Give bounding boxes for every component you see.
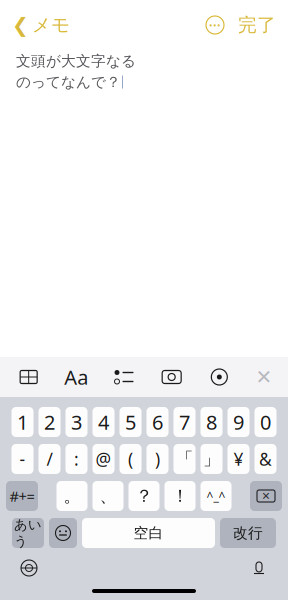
button[interactable]: 完了 xyxy=(230,8,284,42)
staticText: 8 xyxy=(206,409,217,435)
staticText: ¥ xyxy=(233,447,243,470)
staticText: ( xyxy=(128,447,133,470)
button[interactable]: - xyxy=(11,444,33,474)
staticText: 文頭が大文字なる xyxy=(16,52,136,70)
staticText: 6 xyxy=(152,409,163,435)
staticText: : xyxy=(74,447,79,470)
button[interactable]: 7 xyxy=(173,407,195,437)
staticText: 1 xyxy=(17,409,28,435)
button[interactable]: & xyxy=(254,444,276,474)
staticText: 改行 xyxy=(233,524,263,542)
button[interactable]: 空白 xyxy=(82,518,215,548)
button[interactable]: マークアップ xyxy=(200,357,238,397)
button[interactable]: ( xyxy=(119,444,141,474)
button[interactable]: ^_^ xyxy=(200,481,231,511)
staticText: メモ xyxy=(32,13,70,36)
staticText: 3 xyxy=(71,409,82,435)
staticText: 9 xyxy=(233,409,244,435)
button[interactable]: ？ xyxy=(128,481,159,511)
staticText: 4 xyxy=(98,409,109,435)
staticText: 5 xyxy=(125,409,136,435)
staticText: 」 xyxy=(203,448,220,470)
button[interactable]: ！ xyxy=(164,481,195,511)
button[interactable]: チェックリスト xyxy=(105,357,143,397)
button[interactable]: 」 xyxy=(200,444,222,474)
button[interactable]: 0 xyxy=(254,407,276,437)
button[interactable]: 2 xyxy=(38,407,60,437)
button[interactable]: 表 xyxy=(10,357,48,397)
button[interactable]: ) xyxy=(146,444,168,474)
staticText: 「 xyxy=(176,448,193,470)
staticText: ) xyxy=(155,447,160,470)
button[interactable]: 、 xyxy=(92,481,123,511)
button[interactable]: ❮ xyxy=(4,8,78,42)
button[interactable]: / xyxy=(38,444,60,474)
staticText: 0 xyxy=(260,409,271,435)
button[interactable]: 「 xyxy=(173,444,195,474)
staticText: ！ xyxy=(171,485,188,507)
staticText: 。 xyxy=(63,485,80,507)
staticText: / xyxy=(46,447,52,470)
staticText: ❮ xyxy=(12,14,29,36)
button[interactable]: 9 xyxy=(227,407,249,437)
button[interactable]: 1 xyxy=(11,407,33,437)
button[interactable]: 改行 xyxy=(220,518,276,548)
button[interactable]: 削除 xyxy=(250,481,282,511)
staticText: のってなんで？ xyxy=(16,73,121,91)
button[interactable]: 絵文字 xyxy=(49,518,77,548)
button[interactable]: #+= xyxy=(6,481,38,511)
button[interactable]: @ xyxy=(92,444,114,474)
staticText: 完了 xyxy=(238,13,276,36)
staticText: ••• xyxy=(209,19,221,31)
staticText: ^_^ xyxy=(206,488,225,504)
button[interactable]: カメラ xyxy=(153,357,191,397)
staticText: Aa xyxy=(64,364,88,390)
button[interactable]: キーボードを切り替え xyxy=(12,554,46,582)
button[interactable]: 8 xyxy=(200,407,222,437)
staticText: ✕ xyxy=(261,490,270,502)
button[interactable]: 音声入力 xyxy=(242,554,276,582)
staticText: ✕ xyxy=(255,366,272,388)
staticText: - xyxy=(19,447,25,470)
button[interactable]: : xyxy=(65,444,87,474)
button[interactable]: 6 xyxy=(146,407,168,437)
staticText: 2 xyxy=(44,409,55,435)
button[interactable]: 書式 xyxy=(57,357,95,397)
staticText: 7 xyxy=(179,409,190,435)
button[interactable]: 3 xyxy=(65,407,87,437)
button[interactable]: 5 xyxy=(119,407,141,437)
button[interactable]: 。 xyxy=(56,481,87,511)
button[interactable]: その他 xyxy=(200,8,230,42)
staticText: & xyxy=(259,447,272,470)
button[interactable]: あいう xyxy=(12,518,44,548)
staticText: #+= xyxy=(9,486,34,506)
staticText: 空白 xyxy=(133,524,163,542)
staticText: 、 xyxy=(99,485,116,507)
button[interactable]: ¥ xyxy=(227,444,249,474)
button[interactable]: 4 xyxy=(92,407,114,437)
button[interactable]: 閉じる xyxy=(248,357,280,397)
staticText: @ xyxy=(95,447,111,470)
staticText: あいう xyxy=(14,517,42,549)
staticText: ？ xyxy=(135,485,152,507)
